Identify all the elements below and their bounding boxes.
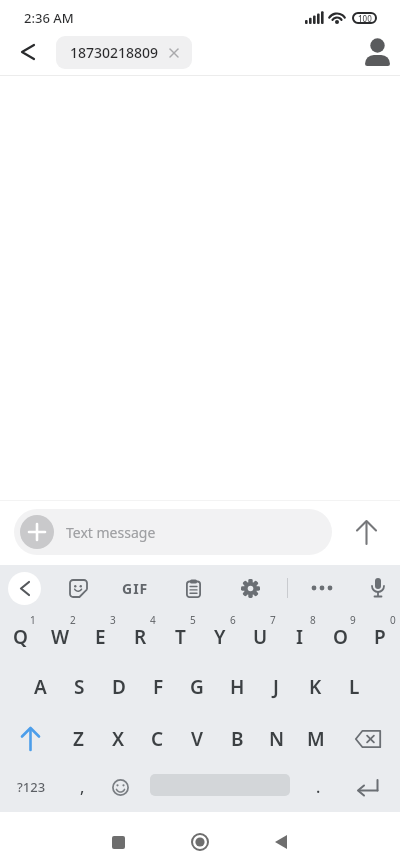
staticText: 7 [270, 613, 276, 627]
staticText: , [80, 776, 85, 798]
staticText: Text message [66, 523, 156, 542]
button[interactable] [363, 38, 391, 66]
button[interactable]: K [295, 665, 335, 709]
staticText: E [95, 624, 106, 650]
staticText: C [151, 726, 164, 752]
staticText: H [230, 674, 245, 700]
staticText: ?123 [17, 778, 46, 796]
staticText: W [51, 624, 70, 650]
staticText: 2 [70, 613, 76, 627]
button[interactable]: X [98, 717, 138, 761]
button[interactable] [344, 765, 392, 809]
staticText: 1 [30, 613, 36, 627]
button[interactable]: U [240, 615, 280, 659]
staticText: B [231, 726, 244, 752]
button[interactable]: I [280, 615, 320, 659]
button[interactable]: G [177, 665, 217, 709]
staticText: S [74, 674, 85, 700]
button[interactable]: O [320, 615, 360, 659]
button[interactable]: H [217, 665, 257, 709]
button[interactable] [20, 515, 54, 549]
button[interactable]: , [68, 765, 96, 809]
staticText: L [349, 674, 360, 700]
button[interactable]: T [160, 615, 200, 659]
staticText: 4 [150, 613, 156, 627]
button[interactable] [185, 827, 215, 857]
staticText: GIF [122, 579, 149, 598]
button[interactable] [266, 827, 296, 857]
staticText: I [296, 624, 304, 650]
button[interactable]: Text message [14, 509, 332, 555]
staticText: Z [73, 726, 84, 752]
staticText: . [316, 776, 321, 798]
staticText: J [273, 674, 279, 700]
button[interactable]: R [120, 615, 160, 659]
staticText: T [175, 624, 186, 650]
button[interactable] [104, 765, 136, 809]
staticText: A [34, 674, 47, 700]
staticText: 2:36 AM [24, 9, 74, 27]
staticText: V [191, 726, 203, 752]
staticText: X [112, 726, 125, 752]
button[interactable] [305, 573, 339, 603]
button[interactable]: Y [200, 615, 240, 659]
button[interactable] [348, 514, 384, 550]
staticText: R [134, 624, 147, 650]
button[interactable]: V [177, 717, 217, 761]
button[interactable]: M [296, 717, 336, 761]
button[interactable]: Q [0, 615, 40, 659]
button[interactable]: B [217, 717, 257, 761]
button[interactable] [103, 827, 133, 857]
staticText: N [269, 726, 285, 752]
button[interactable]: F [138, 665, 178, 709]
button[interactable] [235, 573, 265, 603]
button[interactable] [14, 38, 42, 66]
button[interactable] [178, 573, 208, 603]
staticText: Q [13, 624, 28, 650]
button[interactable] [8, 572, 41, 605]
staticText: K [309, 674, 322, 700]
staticText: 3 [110, 613, 116, 627]
staticText: 9 [350, 613, 356, 627]
staticText: G [190, 674, 204, 700]
button[interactable]: Z [58, 717, 98, 761]
button[interactable]: L [334, 665, 374, 709]
button[interactable]: D [99, 665, 139, 709]
staticText: U [253, 624, 268, 650]
button[interactable]: C [137, 717, 177, 761]
button[interactable] [344, 717, 392, 761]
staticText: 0 [390, 613, 396, 627]
staticText: 6 [230, 613, 236, 627]
staticText: 18730218809 [70, 43, 159, 62]
button[interactable]: GIF [116, 573, 154, 603]
button[interactable]: 18730218809 [56, 36, 192, 69]
staticText: P [374, 624, 386, 650]
button[interactable] [363, 573, 393, 603]
button[interactable]: ?123 [8, 765, 54, 809]
staticText: 5 [190, 613, 196, 627]
button[interactable]: J [256, 665, 296, 709]
button[interactable]: N [257, 717, 297, 761]
staticText: 100 [358, 13, 372, 24]
staticText: O [333, 624, 348, 650]
staticText: F [153, 674, 164, 700]
button[interactable]: A [20, 665, 60, 709]
button[interactable]: . [304, 765, 332, 809]
button[interactable]: P [360, 615, 400, 659]
staticText: M [307, 726, 325, 752]
staticText: Y [214, 624, 226, 650]
button[interactable] [6, 717, 54, 761]
staticText: 8 [310, 613, 316, 627]
button[interactable]: S [59, 665, 99, 709]
staticText: D [112, 674, 126, 700]
button[interactable]: E [80, 615, 120, 659]
button[interactable]: W [40, 615, 80, 659]
button[interactable] [63, 573, 93, 603]
